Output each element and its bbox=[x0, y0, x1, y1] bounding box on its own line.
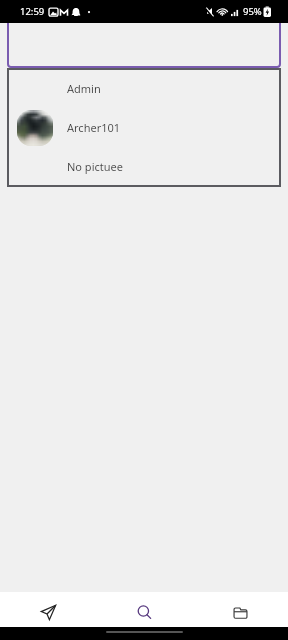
button[interactable]: Send bbox=[0, 592, 96, 627]
button[interactable]: Admin bbox=[7, 69, 281, 108]
button[interactable]: Files bbox=[192, 592, 288, 627]
staticText: 95% bbox=[243, 5, 262, 18]
button[interactable] bbox=[7, 23, 281, 68]
staticText: Archer101 bbox=[67, 120, 121, 135]
button[interactable]: Archer101 bbox=[7, 108, 281, 147]
button[interactable]: No pictuee bbox=[7, 147, 281, 186]
staticText: No pictuee bbox=[67, 159, 123, 174]
staticText: 12:59 bbox=[20, 5, 45, 18]
staticText: Admin bbox=[67, 81, 101, 96]
button[interactable]: Search bbox=[96, 592, 192, 627]
